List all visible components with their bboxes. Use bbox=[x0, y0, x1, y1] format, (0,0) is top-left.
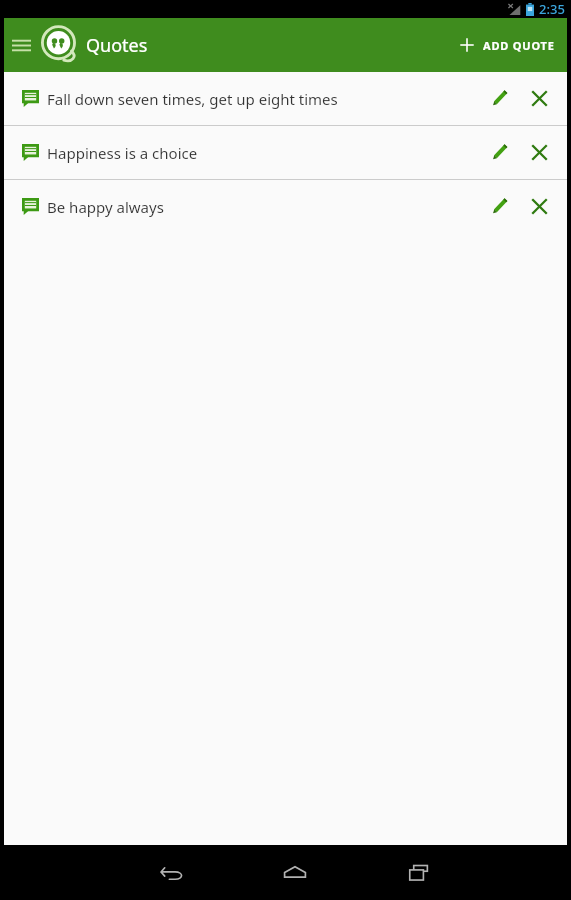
button[interactable]: Edit quote bbox=[479, 72, 519, 125]
button[interactable]: Delete quote bbox=[519, 180, 559, 233]
button[interactable]: Delete quote bbox=[519, 126, 559, 179]
button[interactable]: Edit quote bbox=[479, 126, 519, 179]
button[interactable]: Open navigation drawer bbox=[4, 18, 38, 72]
button[interactable]: Back bbox=[110, 845, 233, 900]
button[interactable]: Be happy always bbox=[4, 180, 567, 233]
button[interactable]: Home bbox=[233, 845, 357, 900]
button[interactable]: Happiness is a choice bbox=[4, 126, 567, 179]
button[interactable]: Fall down seven times, get up eight time… bbox=[4, 72, 567, 125]
button[interactable]: ADD QUOTE bbox=[447, 18, 567, 72]
staticText: 2:35 bbox=[539, 0, 565, 18]
button[interactable]: Edit quote bbox=[479, 180, 519, 233]
staticText: Happiness is a choice bbox=[47, 143, 479, 163]
staticText: ADD QUOTE bbox=[483, 38, 555, 53]
button[interactable]: Delete quote bbox=[519, 72, 559, 125]
staticText: Quotes bbox=[86, 33, 148, 58]
button[interactable]: Recent apps bbox=[357, 845, 481, 900]
staticText: Fall down seven times, get up eight time… bbox=[47, 89, 479, 109]
staticText: Be happy always bbox=[47, 197, 479, 217]
